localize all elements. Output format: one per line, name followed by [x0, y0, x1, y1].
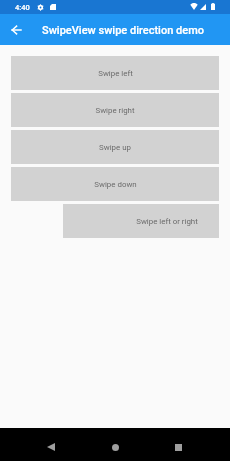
button[interactable]: Recent apps — [166, 435, 190, 459]
staticText: SwipeView swipe direction demo — [42, 24, 205, 37]
button[interactable]: Swipe down — [11, 167, 219, 201]
staticText: Swipe down — [94, 180, 137, 189]
button[interactable]: Back — [39, 435, 63, 459]
button[interactable]: Swipe left or right — [63, 204, 219, 238]
staticText: Swipe left or right — [136, 217, 198, 226]
button[interactable]: Navigate up — [5, 19, 27, 41]
staticText: Swipe left — [98, 69, 133, 78]
button[interactable]: Swipe right — [11, 93, 219, 127]
staticText: Swipe up — [99, 143, 131, 152]
button[interactable]: Swipe left — [11, 56, 219, 90]
staticText: Swipe right — [95, 106, 135, 115]
button[interactable]: Swipe up — [11, 130, 219, 164]
button[interactable]: Home — [103, 435, 127, 459]
staticText: 4:40 — [15, 3, 30, 12]
